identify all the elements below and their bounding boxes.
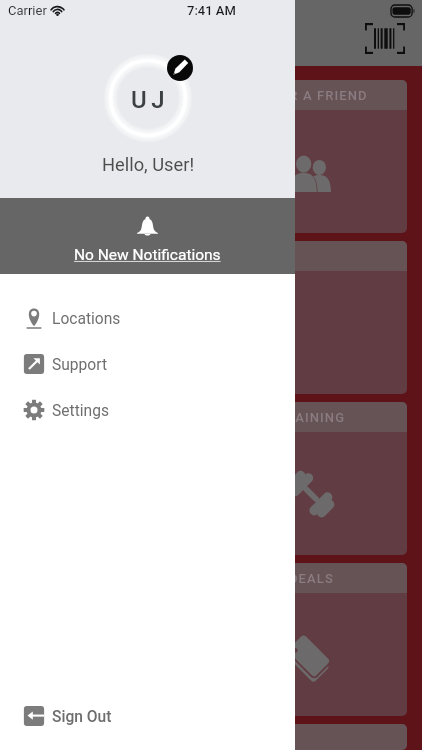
button[interactable]: MY STATS <box>15 241 207 394</box>
button[interactable]: Scan barcode <box>365 23 405 54</box>
staticText: NUTRITION <box>73 410 150 425</box>
staticText: Carrier <box>8 3 47 18</box>
button[interactable]: MORE <box>15 724 207 750</box>
staticText: UJ <box>131 86 170 114</box>
staticText: DEALS <box>289 571 334 586</box>
button[interactable]: Support <box>0 341 295 387</box>
button[interactable]: NUTRITION <box>15 402 207 555</box>
staticText: Locations <box>52 310 121 328</box>
button[interactable]: REWARDS <box>15 563 207 716</box>
staticText: REFER A FRIEND <box>255 88 368 103</box>
button[interactable]: BOOK CLASS <box>15 80 207 233</box>
button[interactable] <box>215 241 407 394</box>
staticText: Support <box>52 356 108 374</box>
button[interactable]: TRAINING <box>215 402 407 555</box>
staticText: Sign Out <box>52 708 112 726</box>
staticText: Settings <box>52 402 109 420</box>
button[interactable]: Sign Out <box>0 693 295 739</box>
staticText: Hello, User! <box>102 154 195 175</box>
button[interactable]: No New Notifications <box>0 198 295 274</box>
button[interactable]: Settings <box>0 387 295 433</box>
staticText: TRAINING <box>277 410 346 425</box>
button[interactable]: Edit profile <box>167 55 193 81</box>
button[interactable]: DEALS <box>215 563 407 716</box>
button[interactable] <box>215 724 407 750</box>
staticText: BOOK CLASS <box>67 88 156 103</box>
staticText: 7:41 AM <box>187 3 236 18</box>
button[interactable]: REFER A FRIEND <box>215 80 407 233</box>
button[interactable]: Locations <box>0 295 295 341</box>
staticText: No New Notifications <box>74 246 221 264</box>
staticText: MY STATS <box>76 249 146 264</box>
